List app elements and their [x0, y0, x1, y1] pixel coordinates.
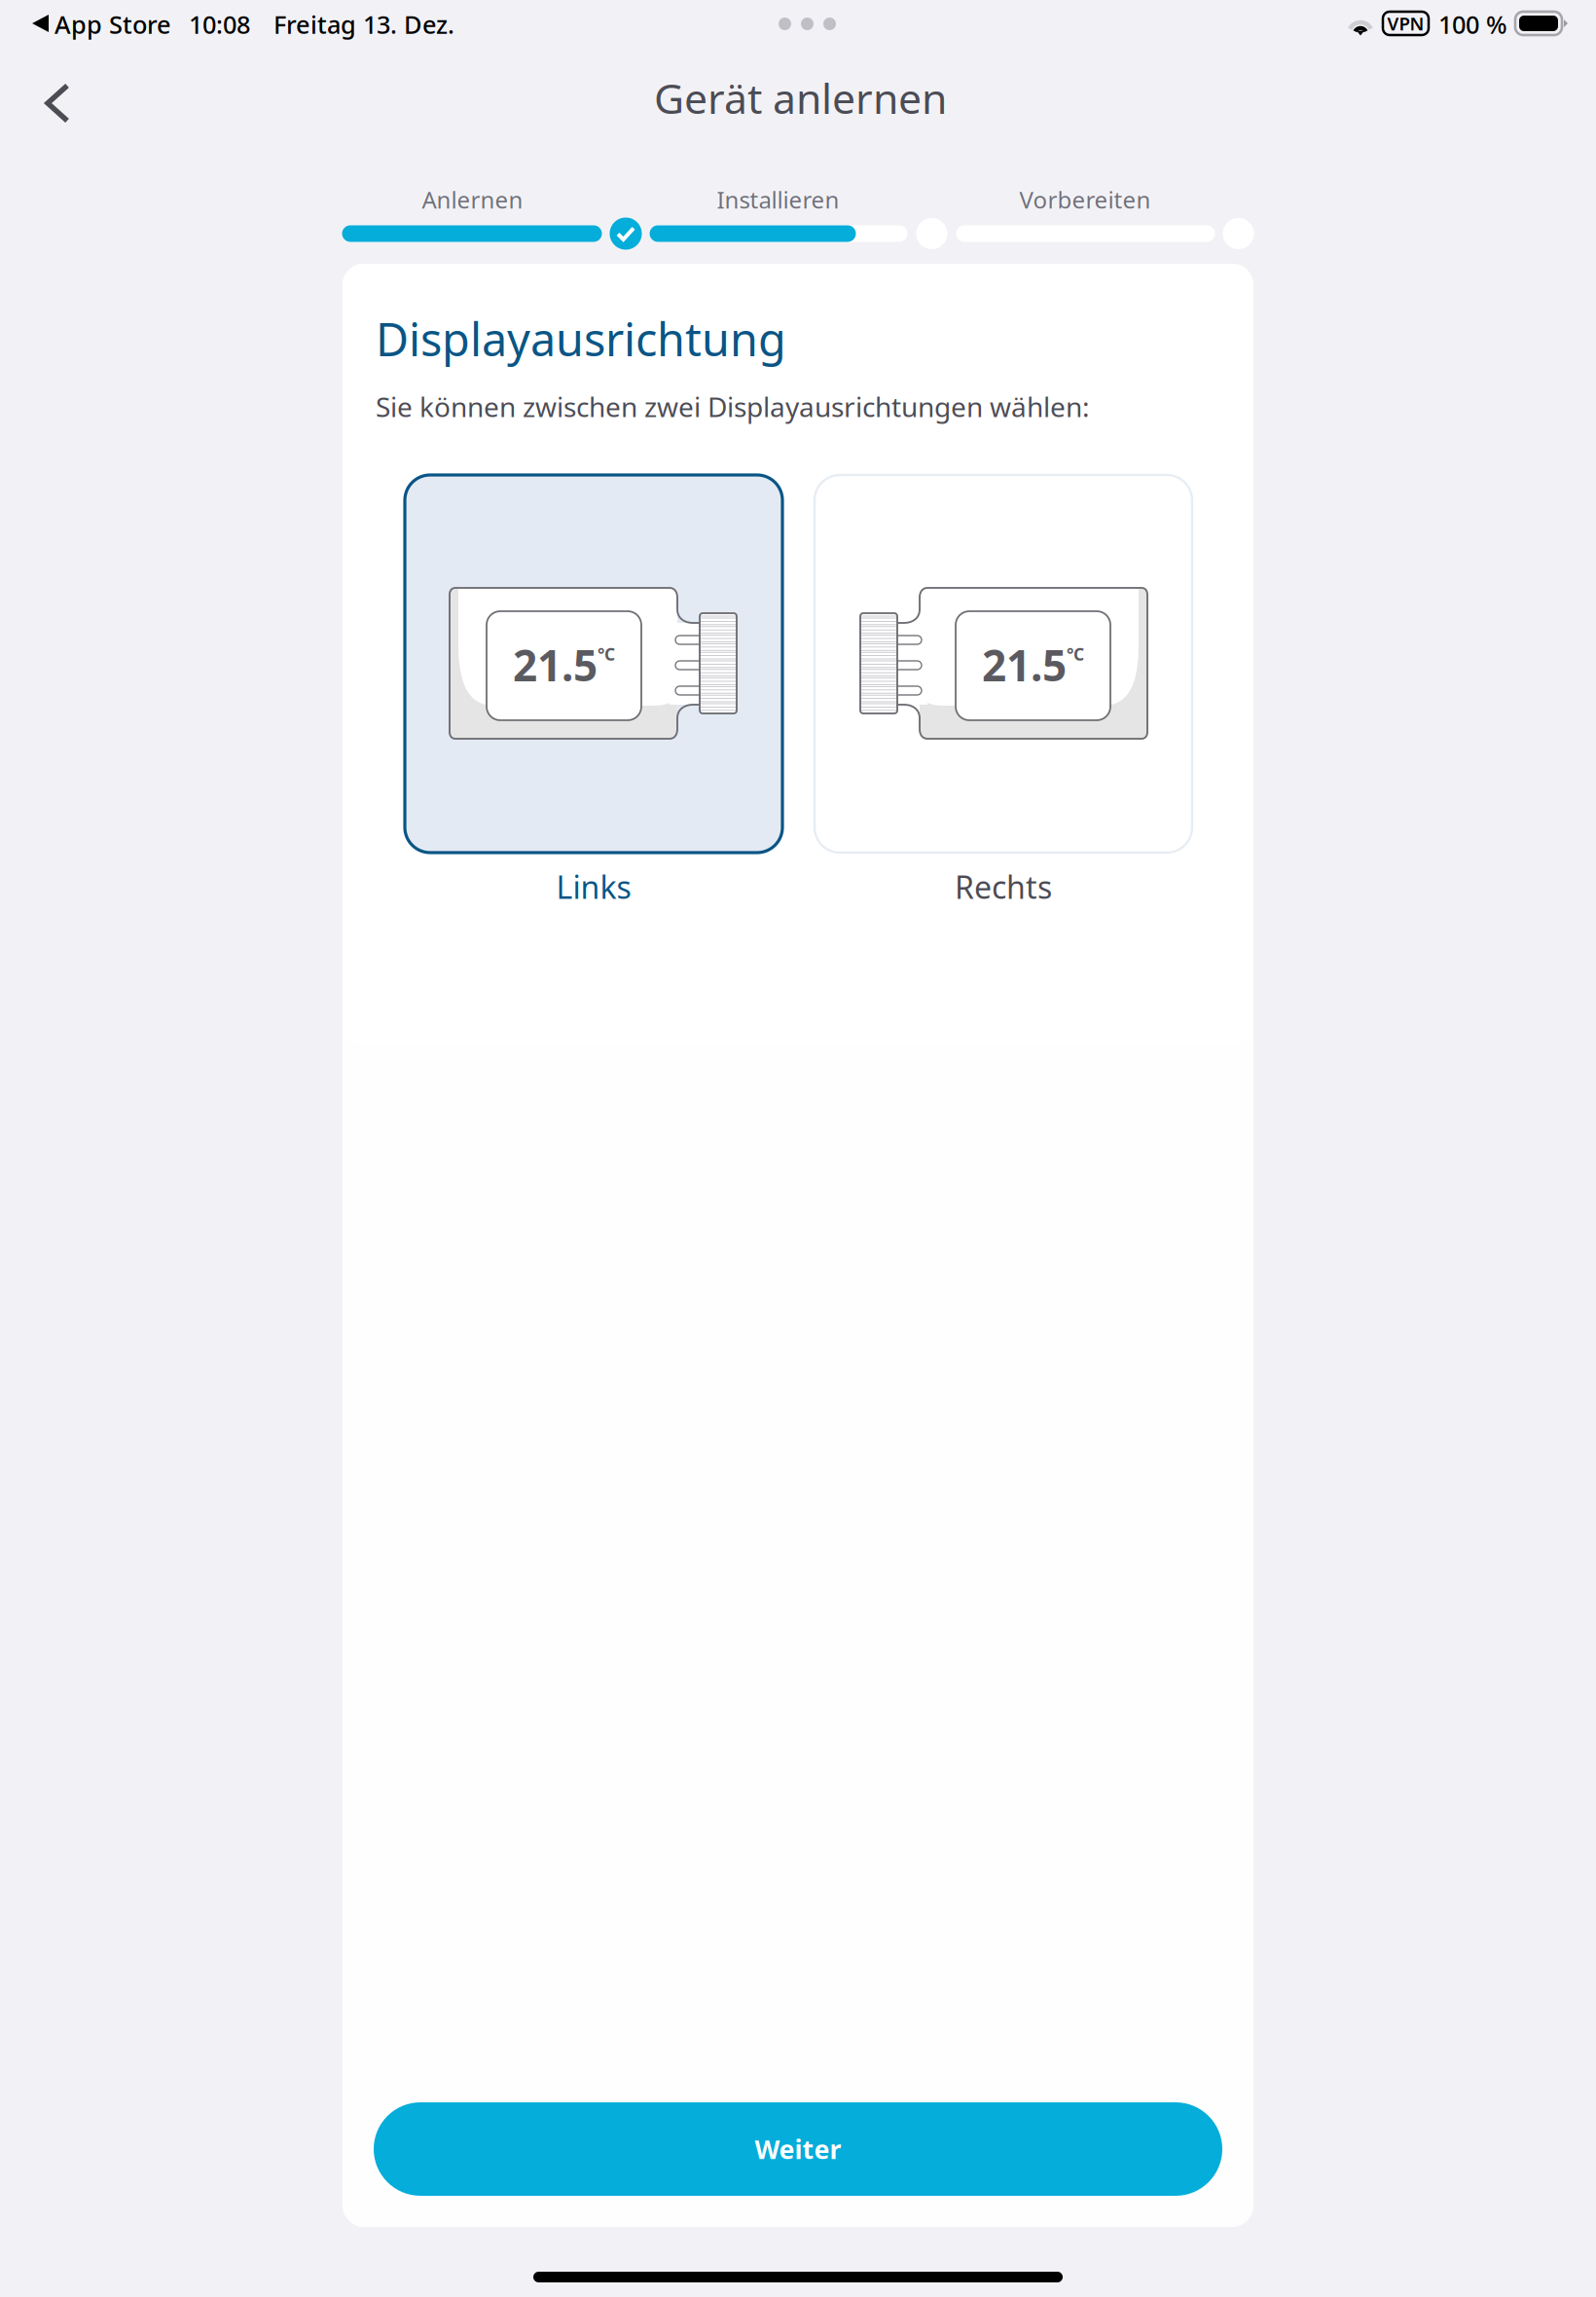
- staticText: App Store: [54, 8, 171, 40]
- staticText: VPN: [1387, 11, 1424, 35]
- staticText: 21.5: [513, 636, 598, 693]
- staticText: Anlernen: [422, 184, 523, 215]
- staticText: 10:08: [189, 8, 250, 40]
- staticText: Displayausrichtung: [376, 309, 786, 369]
- staticText: Vorbereiten: [1019, 184, 1151, 215]
- staticText: °C: [598, 643, 615, 665]
- staticText: Rechts: [955, 866, 1052, 907]
- button[interactable]: 21.5: [815, 475, 1192, 909]
- staticText: Sie können zwischen zwei Displayausricht…: [376, 388, 1090, 425]
- staticText: Weiter: [755, 2132, 841, 2166]
- staticText: Freitag 13. Dez.: [273, 8, 454, 40]
- staticText: 100 %: [1438, 8, 1507, 40]
- button[interactable]: Weiter: [374, 2102, 1222, 2196]
- staticText: Gerät anlernen: [654, 70, 947, 125]
- button[interactable]: 21.5: [405, 475, 782, 909]
- staticText: Links: [556, 866, 631, 907]
- button[interactable]: Zurück: [15, 58, 100, 148]
- staticText: 21.5: [982, 636, 1067, 693]
- staticText: °C: [1067, 643, 1084, 665]
- staticText: Installieren: [717, 184, 839, 215]
